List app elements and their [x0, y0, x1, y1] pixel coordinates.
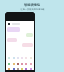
- button[interactable]: Emoji: [12, 67, 16, 70]
- staticText: 智能表情包: [24, 3, 40, 7]
- button[interactable]: Emoji: [20, 62, 24, 66]
- button[interactable]: Emoji: [29, 67, 33, 70]
- button[interactable]: [22, 43, 33, 47]
- button[interactable]: [26, 33, 33, 37]
- button[interactable]: Emoji: [24, 67, 28, 70]
- button[interactable]: Emoji: [7, 62, 11, 66]
- button[interactable]: Emoji: [16, 67, 20, 70]
- staticText: 让每一次聊天都充满乐趣: [20, 8, 45, 11]
- button[interactable]: Emoji: [24, 56, 28, 60]
- button[interactable]: Emoji: [29, 62, 33, 66]
- button[interactable]: Back: [6, 21, 34, 26]
- button[interactable]: Emoji: [7, 67, 11, 70]
- button[interactable]: [7, 27, 20, 32]
- button[interactable]: Emoji: [29, 56, 33, 60]
- button[interactable]: Emoji: [24, 62, 28, 66]
- button[interactable]: [7, 38, 17, 42]
- button[interactable]: Emoji: [16, 56, 20, 60]
- button[interactable]: Emoji: [20, 56, 24, 60]
- button[interactable]: Emoji: [7, 56, 11, 60]
- button[interactable]: Emoji: [12, 56, 16, 60]
- button[interactable]: Emoji: [12, 62, 16, 66]
- button[interactable]: Emoji: [16, 62, 20, 66]
- button[interactable]: Emoji: [20, 67, 24, 70]
